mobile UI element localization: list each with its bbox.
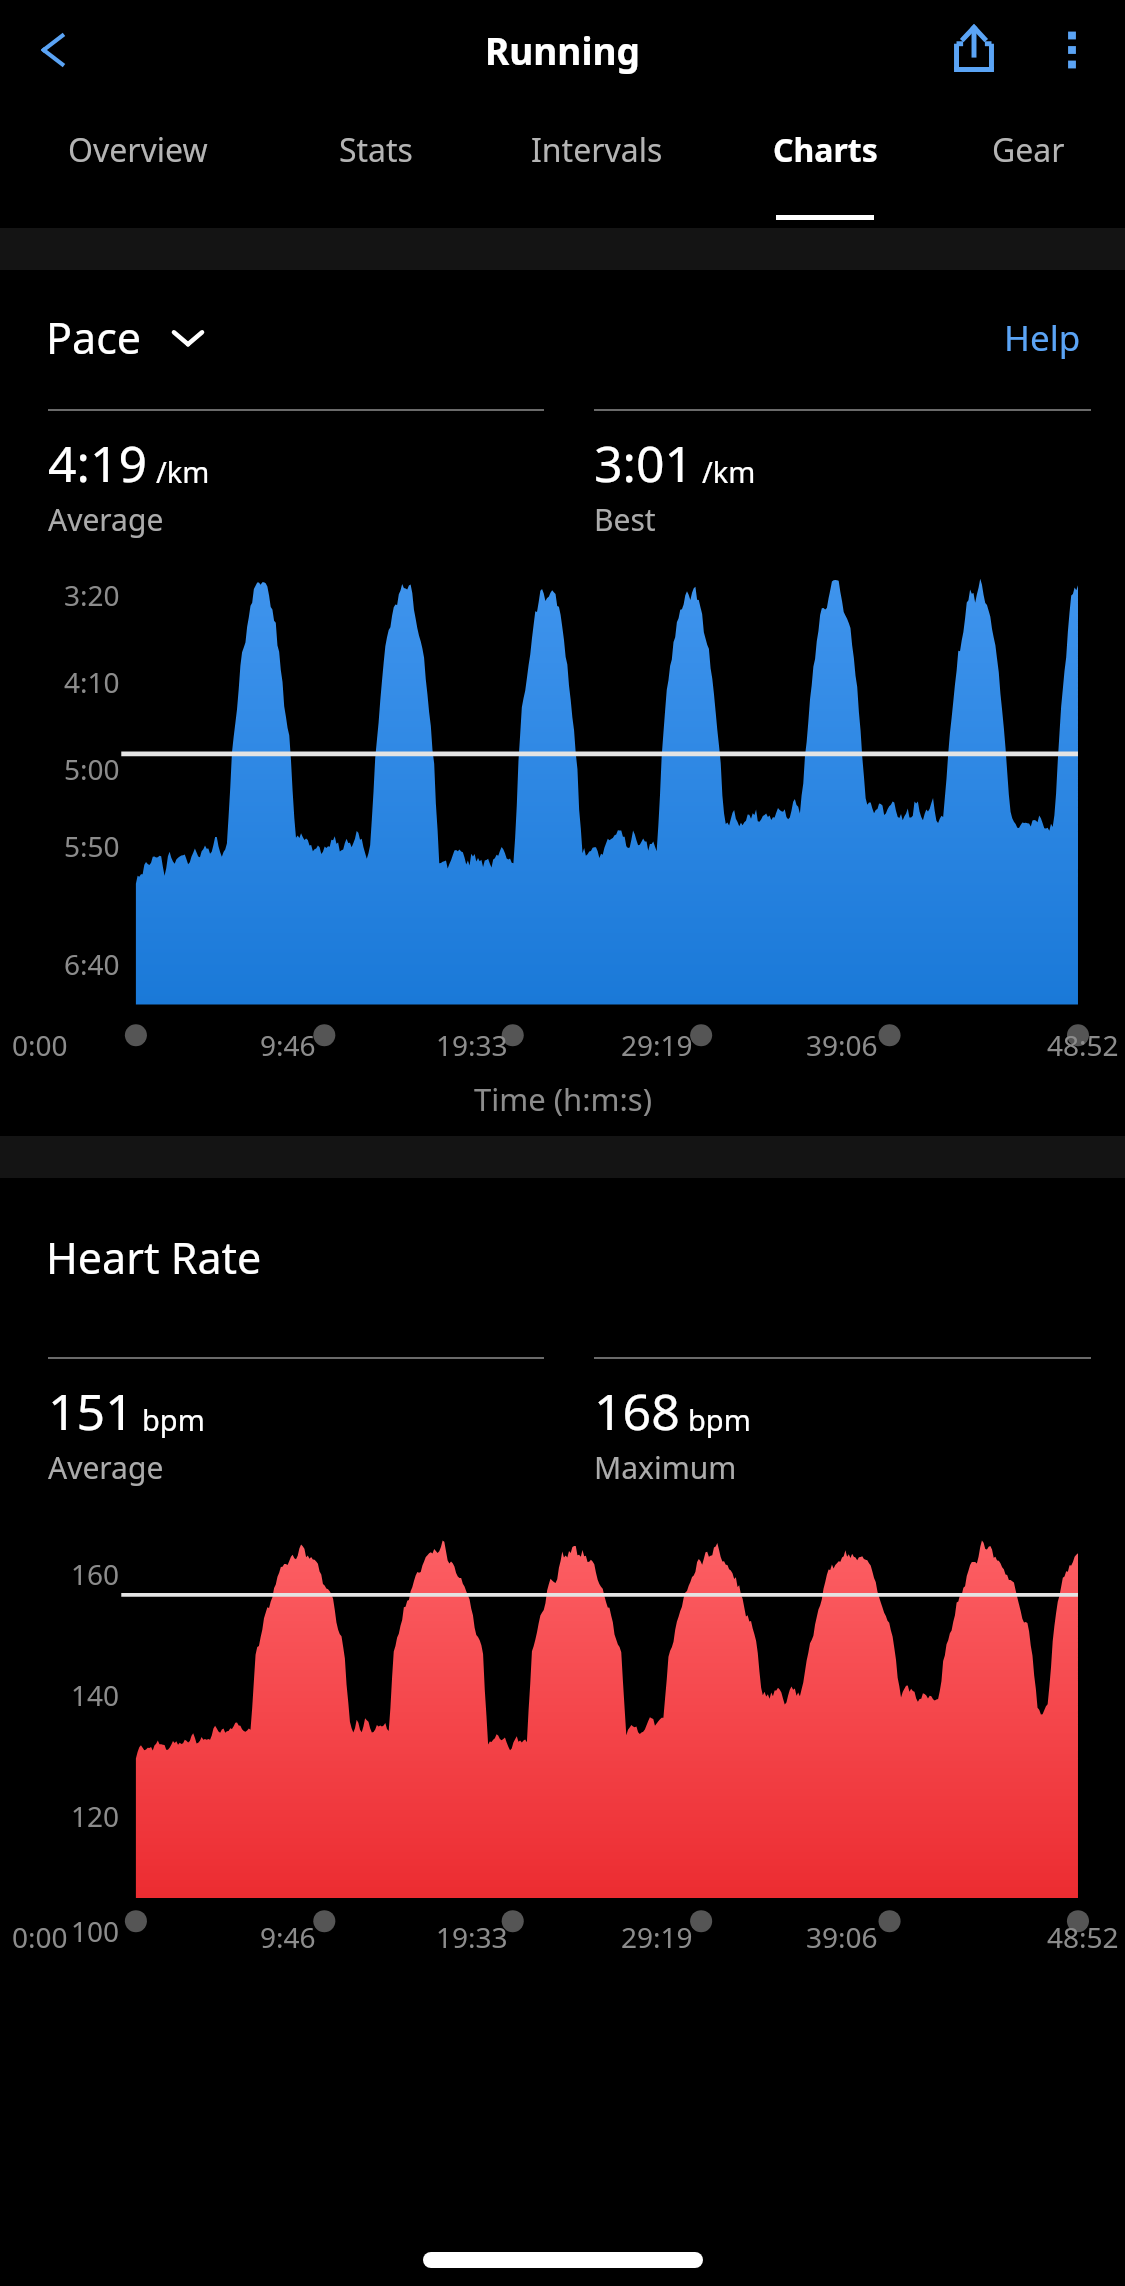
staticText: 9:46 xyxy=(260,1918,316,1956)
staticText: Overview xyxy=(68,128,208,172)
button[interactable]: Help xyxy=(1004,314,1081,362)
button[interactable]: Gear xyxy=(931,100,1125,228)
button[interactable]: Share xyxy=(941,17,1007,83)
staticText: bpm xyxy=(688,1400,751,1439)
button[interactable]: Intervals xyxy=(475,100,719,228)
staticText: 4:10 xyxy=(64,663,120,701)
staticText: Stats xyxy=(339,128,413,172)
staticText: 0:00 xyxy=(12,1026,68,1064)
button[interactable]: Overview xyxy=(0,100,276,228)
staticText: Heart Rate xyxy=(46,1228,262,1287)
staticText: 168 xyxy=(594,1377,680,1445)
staticText: 151 xyxy=(48,1377,134,1445)
staticText: 4:19 xyxy=(48,429,148,497)
staticText: Running xyxy=(485,25,640,75)
staticText: 29:19 xyxy=(621,1026,693,1064)
button[interactable]: Pace xyxy=(46,308,210,367)
staticText: 48:52 xyxy=(1047,1918,1119,1956)
staticText: /km xyxy=(156,452,210,491)
staticText: bpm xyxy=(142,1400,205,1439)
staticText: Intervals xyxy=(531,128,663,172)
button[interactable]: Charts xyxy=(719,100,931,228)
staticText: Gear xyxy=(992,128,1065,172)
staticText: 6:40 xyxy=(64,945,120,983)
staticText: /km xyxy=(702,452,756,491)
staticText: 9:46 xyxy=(260,1026,316,1064)
staticText: 3:20 xyxy=(64,576,120,614)
staticText: Average xyxy=(48,1447,164,1488)
staticText: Charts xyxy=(773,128,878,172)
staticText: 5:00 xyxy=(64,750,120,788)
staticText: 48:52 xyxy=(1047,1026,1119,1064)
button[interactable]: More options xyxy=(1043,21,1101,79)
staticText: Average xyxy=(48,499,164,540)
button[interactable]: Stats xyxy=(276,100,475,228)
staticText: 19:33 xyxy=(436,1918,508,1956)
staticText: 39:06 xyxy=(806,1918,878,1956)
staticText: 100 xyxy=(71,1912,120,1950)
button[interactable]: Back xyxy=(14,19,76,81)
staticText: 0:00 xyxy=(12,1918,68,1956)
staticText: 39:06 xyxy=(806,1026,878,1064)
staticText: Best xyxy=(594,499,656,540)
staticText: 19:33 xyxy=(436,1026,508,1064)
staticText: 120 xyxy=(71,1797,120,1835)
staticText: Help xyxy=(1004,314,1081,362)
staticText: Maximum xyxy=(594,1447,737,1488)
staticText: Pace xyxy=(46,308,142,367)
staticText: 5:50 xyxy=(64,827,120,865)
staticText: 140 xyxy=(71,1676,120,1714)
staticText: 3:01 xyxy=(594,429,694,497)
staticText: 160 xyxy=(71,1555,120,1593)
staticText: 29:19 xyxy=(621,1918,693,1956)
staticText: Time (h:m:s) xyxy=(474,1078,652,1120)
